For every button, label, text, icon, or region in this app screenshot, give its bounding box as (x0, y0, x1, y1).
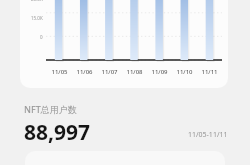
staticText: 11/05 (51, 68, 68, 76)
staticText: 11/08 (126, 68, 143, 76)
staticText: 88,997 (24, 118, 91, 147)
staticText: 11/06 (76, 68, 93, 76)
button[interactable]: 35.0K (20, 0, 228, 88)
staticText: 11/11 (201, 68, 218, 76)
staticText: 11/07 (101, 68, 118, 76)
staticText: 15.0K (31, 15, 43, 21)
button[interactable]: NFT总用户数 (24, 103, 91, 147)
staticText: 11/10 (176, 68, 193, 76)
staticText: 0 (40, 34, 43, 40)
staticText: 20.0K (31, 0, 43, 2)
staticText: 11/05-11/11 (188, 130, 228, 140)
staticText: 11/09 (151, 68, 168, 76)
staticText: NFT总用户数 (24, 103, 77, 115)
